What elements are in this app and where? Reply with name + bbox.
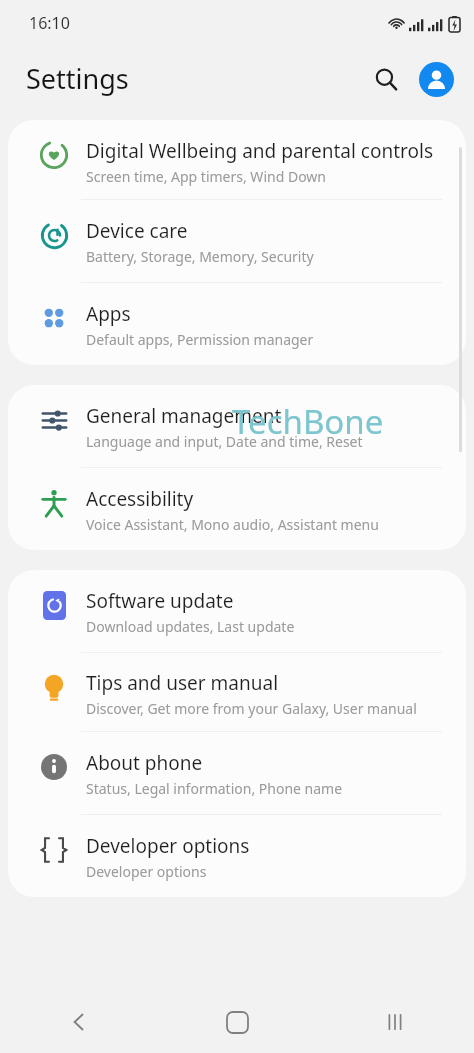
staticText: Language and input, Date and time, Reset: [86, 432, 363, 451]
button[interactable]: Accessibility: [8, 468, 466, 550]
button[interactable]: About phone: [8, 732, 466, 814]
staticText: Developer options: [86, 833, 250, 859]
staticText: Status, Legal information, Phone name: [86, 779, 343, 798]
staticText: Tips and user manual: [86, 670, 279, 696]
button[interactable]: Account: [414, 57, 458, 101]
button[interactable]: General management: [8, 385, 466, 467]
staticText: Voice Assistant, Mono audio, Assistant m…: [86, 515, 379, 534]
staticText: Discover, Get more from your Galaxy, Use…: [86, 699, 417, 718]
button[interactable]: Digital Wellbeing and parental controls: [8, 120, 466, 199]
staticText: General management: [86, 403, 282, 429]
button[interactable]: Home: [158, 991, 316, 1053]
button[interactable]: Recent apps: [316, 991, 474, 1053]
staticText: Accessibility: [86, 486, 194, 512]
staticText: Screen time, App timers, Wind Down: [86, 167, 326, 186]
button[interactable]: Developer options: [8, 815, 466, 897]
staticText: Digital Wellbeing and parental controls: [86, 138, 434, 164]
staticText: Battery, Storage, Memory, Security: [86, 247, 314, 266]
button[interactable]: Software update: [8, 570, 466, 652]
staticText: TechBone: [232, 399, 384, 444]
staticText: Developer options: [86, 862, 207, 881]
button[interactable]: Tips and user manual: [8, 653, 466, 731]
button[interactable]: Back: [0, 991, 158, 1053]
staticText: About phone: [86, 750, 203, 776]
staticText: Apps: [86, 301, 131, 327]
button[interactable]: Apps: [8, 283, 466, 365]
staticText: Download updates, Last update: [86, 617, 295, 636]
button[interactable]: Search: [364, 57, 408, 101]
staticText: Software update: [86, 588, 234, 614]
staticText: Default apps, Permission manager: [86, 330, 314, 349]
staticText: Device care: [86, 218, 188, 244]
staticText: 16:10: [29, 12, 70, 34]
staticText: Settings: [26, 60, 129, 97]
button[interactable]: Device care: [8, 200, 466, 282]
